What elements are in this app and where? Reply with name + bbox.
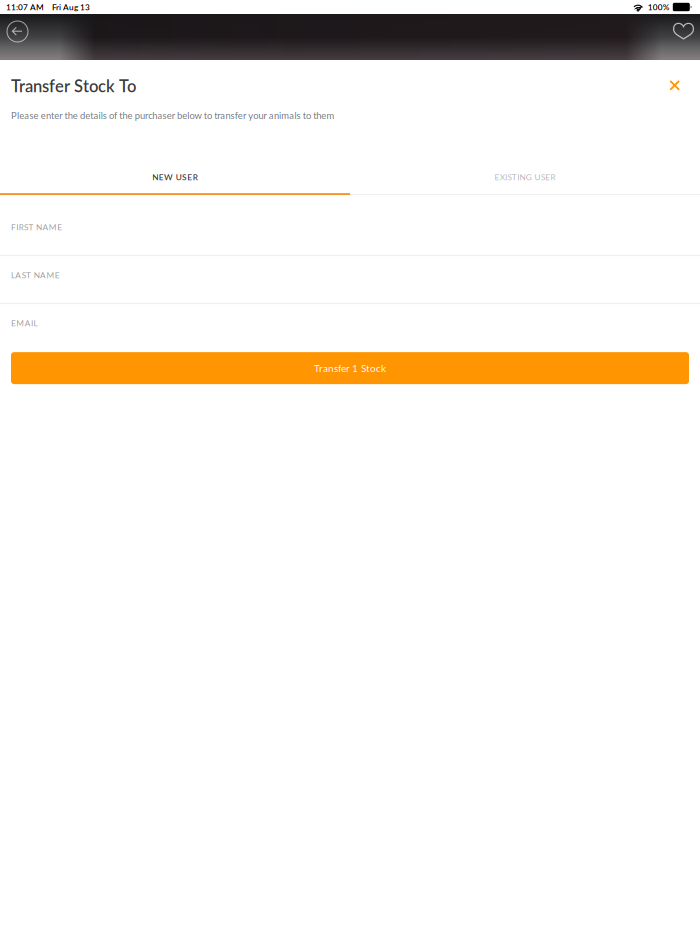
button[interactable]: EXISTING USER (350, 161, 700, 195)
staticText: Transfer Stock To (11, 76, 136, 96)
staticText: 100% (648, 2, 670, 12)
staticText: Please enter the details of the purchase… (11, 110, 334, 121)
button[interactable]: Transfer 1 Stock (11, 352, 689, 384)
staticText: NEW USER (152, 172, 198, 182)
staticText: LAST NAME (11, 270, 60, 280)
button[interactable]: NEW USER (0, 161, 350, 195)
button[interactable]: Back (4, 18, 31, 45)
staticText: 11:07 AM (6, 2, 44, 12)
button[interactable]: Close (665, 76, 684, 95)
staticText: Transfer 1 Stock (314, 362, 386, 374)
staticText: FIRST NAME (11, 222, 62, 232)
staticText: Fri Aug 13 (52, 2, 90, 12)
staticText: EXISTING USER (494, 172, 556, 182)
button[interactable]: Favourite (670, 18, 697, 43)
staticText: EMAIL (11, 318, 37, 328)
